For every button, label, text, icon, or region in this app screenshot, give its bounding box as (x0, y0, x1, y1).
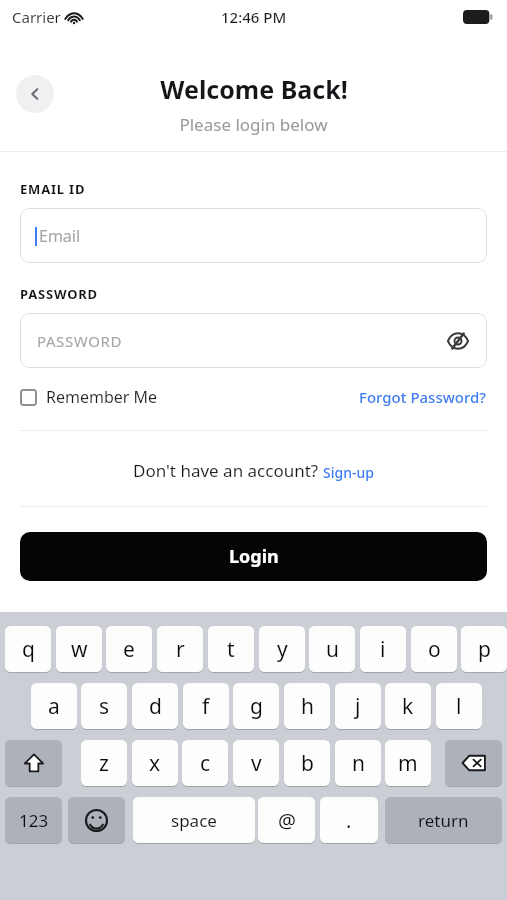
button[interactable]: PASSWORD (20, 313, 487, 368)
staticText: k (402, 692, 414, 721)
staticText: w (71, 635, 88, 664)
staticText: EMAIL ID (20, 180, 86, 198)
staticText: z (99, 749, 109, 778)
button[interactable]: m (385, 740, 431, 786)
button[interactable]: x (132, 740, 178, 786)
button[interactable]: Sign-up (323, 463, 374, 482)
staticText: x (149, 749, 161, 778)
button[interactable]: Backspace (445, 740, 502, 786)
button[interactable]: l (436, 683, 482, 729)
button[interactable]: o (411, 626, 457, 672)
staticText: r (176, 635, 185, 664)
staticText: u (326, 635, 339, 664)
staticText: space (171, 809, 217, 832)
button[interactable]: a (31, 683, 77, 729)
button[interactable]: f (183, 683, 229, 729)
button[interactable]: h (284, 683, 330, 729)
button[interactable]: Show password (441, 324, 475, 358)
staticText: q (22, 635, 35, 664)
button[interactable]: s (81, 683, 127, 729)
staticText: PASSWORD (37, 331, 122, 351)
staticText: t (227, 635, 235, 664)
staticText: Please login below (179, 113, 328, 136)
button[interactable]: d (132, 683, 178, 729)
button[interactable]: w (56, 626, 102, 672)
staticText: 12:46 PM (221, 7, 287, 27)
button[interactable]: r (157, 626, 203, 672)
staticText: Don't have an account? (133, 459, 323, 482)
staticText: f (202, 692, 210, 721)
staticText: s (99, 692, 110, 721)
staticText: Remember Me (46, 386, 158, 408)
staticText: h (301, 692, 314, 721)
button[interactable]: Emoji (68, 797, 125, 843)
staticText: l (456, 692, 462, 721)
staticText: m (398, 749, 418, 778)
staticText: n (352, 749, 365, 778)
staticText: 123 (19, 809, 49, 832)
staticText: c (200, 749, 211, 778)
staticText: Forgot Password? (359, 387, 487, 407)
button[interactable]: return (385, 797, 502, 843)
button[interactable]: Remember Me (20, 386, 158, 408)
staticText: v (251, 749, 262, 778)
button[interactable]: k (385, 683, 431, 729)
staticText: g (250, 692, 263, 721)
button[interactable]: j (335, 683, 381, 729)
button[interactable]: Forgot Password? (359, 387, 487, 407)
staticText: Welcome Back! (160, 72, 348, 106)
button[interactable]: v (233, 740, 279, 786)
button[interactable]: Email (20, 208, 487, 263)
button[interactable]: Back (16, 75, 54, 113)
staticText: Carrier (12, 7, 61, 27)
staticText: b (301, 749, 314, 778)
staticText: d (149, 692, 162, 721)
button[interactable]: b (284, 740, 330, 786)
staticText: return (418, 809, 469, 832)
staticText: j (355, 692, 361, 721)
staticText: @ (278, 807, 296, 834)
button[interactable]: i (360, 626, 406, 672)
button[interactable]: y (259, 626, 305, 672)
staticText: Email (39, 225, 81, 247)
button[interactable]: c (182, 740, 228, 786)
staticText: Sign-up (323, 463, 374, 482)
button[interactable]: q (5, 626, 51, 672)
staticText: e (123, 635, 135, 664)
staticText: y (277, 635, 288, 664)
staticText: a (48, 692, 60, 721)
button[interactable]: z (81, 740, 127, 786)
button[interactable]: . (320, 797, 378, 843)
staticText: Login (229, 544, 279, 569)
button[interactable]: p (461, 626, 507, 672)
button[interactable]: u (309, 626, 355, 672)
button[interactable]: g (233, 683, 279, 729)
staticText: i (380, 635, 386, 664)
staticText: PASSWORD (20, 285, 98, 303)
staticText: p (478, 635, 491, 664)
button[interactable]: e (106, 626, 152, 672)
button[interactable]: Login (20, 532, 487, 581)
staticText: . (346, 807, 352, 834)
button[interactable]: @ (258, 797, 315, 843)
button[interactable]: t (208, 626, 254, 672)
button[interactable]: n (335, 740, 381, 786)
staticText: o (428, 635, 441, 664)
button[interactable]: 123 (5, 797, 62, 843)
button[interactable]: Shift (5, 740, 62, 786)
button[interactable]: space (133, 797, 255, 843)
